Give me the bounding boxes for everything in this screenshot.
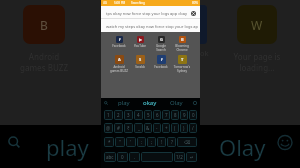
staticText: Facebook — [151, 65, 171, 69]
button[interactable]: 9 — [180, 110, 188, 120]
button[interactable]: 5 — [144, 110, 152, 120]
staticText: ) — [183, 125, 185, 131]
button[interactable]: 4 — [134, 110, 143, 120]
button[interactable]: G — [151, 36, 171, 52]
staticText: # — [117, 125, 120, 131]
button[interactable]: ▶ — [130, 36, 150, 48]
staticText: 7 — [165, 112, 168, 118]
button[interactable] — [141, 152, 173, 162]
button[interactable]: play — [46, 132, 89, 162]
staticText: f — [161, 57, 163, 62]
button[interactable]: 6 — [153, 110, 161, 120]
staticText: 0 — [192, 112, 195, 118]
button[interactable]: S — [130, 55, 150, 69]
button[interactable]: ? — [167, 137, 176, 147]
staticText: abc — [106, 154, 114, 160]
button[interactable]: Emoji — [277, 134, 294, 151]
button[interactable]: ₹ — [124, 123, 133, 133]
button[interactable]: . — [129, 152, 140, 162]
staticText: Searching — [131, 1, 145, 5]
staticText: ; — [151, 139, 153, 145]
button[interactable]: 7 — [162, 110, 170, 120]
staticText: Android games BUZZ — [109, 65, 129, 73]
staticText: ⌫ — [184, 140, 191, 145]
staticText: 8 — [174, 112, 177, 118]
button[interactable]: * — [104, 137, 114, 147]
button[interactable]: Search — [6, 134, 22, 150]
button[interactable]: + — [162, 123, 170, 133]
button[interactable]: @ — [104, 123, 113, 133]
staticText: 5 — [147, 112, 150, 118]
other: Search — [104, 101, 108, 105]
button[interactable]: _ — [134, 123, 143, 133]
staticText: 4 — [137, 112, 140, 118]
staticText: . — [134, 154, 136, 160]
button[interactable]: B — [172, 36, 192, 52]
staticText: + — [165, 125, 168, 131]
staticText: W — [251, 17, 263, 33]
button[interactable]: ! — [157, 137, 166, 147]
button[interactable]: 8 — [171, 110, 179, 120]
staticText: tps okay now force stop your logs app cb… — [106, 11, 191, 16]
button[interactable]: & — [144, 123, 152, 133]
button[interactable]: 1/2 — [174, 152, 185, 162]
button[interactable]: B — [23, 5, 65, 44]
staticText: f — [119, 37, 121, 42]
staticText: & — [146, 125, 150, 131]
staticText: 4G — [103, 1, 107, 5]
staticText: 6 — [156, 112, 159, 118]
button[interactable]: 3 — [124, 110, 133, 120]
staticText: 2 — [117, 112, 120, 118]
staticText: ↵ — [190, 155, 194, 160]
staticText: 1/2 — [176, 154, 183, 160]
button[interactable]: 0 — [189, 110, 197, 120]
button[interactable]: # — [114, 123, 123, 133]
button[interactable]: play — [118, 99, 130, 107]
button[interactable]: ) — [180, 123, 188, 133]
staticText: / — [192, 125, 194, 131]
button[interactable]: okay — [143, 99, 157, 107]
button[interactable]: abc — [104, 152, 116, 162]
button[interactable]: W — [237, 5, 277, 44]
staticText: G — [160, 37, 163, 42]
button[interactable]: f — [151, 55, 171, 69]
button[interactable]: ⌫ — [177, 137, 197, 147]
button[interactable]: f — [109, 36, 129, 48]
button[interactable]: Olay — [170, 99, 183, 107]
staticText: Tomorrow's Sydney — [172, 65, 192, 73]
staticText: S — [139, 57, 142, 62]
button[interactable]: " — [115, 137, 125, 147]
staticText: Blooming Chrome — [172, 44, 192, 52]
staticText: * — [108, 139, 111, 145]
button[interactable]: 2 — [114, 110, 123, 120]
staticText: 0 — [121, 154, 124, 160]
button[interactable]: 0 — [117, 152, 128, 162]
button[interactable]: ; — [147, 137, 156, 147]
button[interactable]: ' — [126, 137, 136, 147]
staticText: ! — [161, 139, 163, 145]
button[interactable]: : — [137, 137, 146, 147]
staticText: 80% — [192, 1, 198, 5]
button[interactable]: / — [189, 123, 197, 133]
staticText: B — [40, 17, 48, 33]
other: Emoji — [193, 101, 197, 105]
staticText: 9 — [183, 112, 186, 118]
staticText: " — [119, 139, 121, 145]
staticText: ₹ — [127, 125, 130, 131]
button[interactable]: tps okay now force stop your logs app cb… — [106, 8, 196, 18]
button[interactable]: A — [109, 55, 129, 73]
button[interactable]: T — [172, 55, 192, 73]
button[interactable]: ( — [171, 123, 179, 133]
staticText: _ — [138, 125, 140, 131]
staticText: ( — [174, 125, 176, 131]
staticText: Google Search — [151, 44, 171, 52]
button[interactable]: Olay — [219, 132, 266, 162]
staticText: ok — [200, 48, 209, 58]
button[interactable]: - — [153, 123, 161, 133]
staticText: YouTube — [130, 44, 150, 48]
button[interactable]: 1 — [104, 110, 113, 120]
button[interactable]: watch my steps okay now force stop your … — [106, 24, 199, 29]
button[interactable]: ↵ — [186, 152, 197, 162]
